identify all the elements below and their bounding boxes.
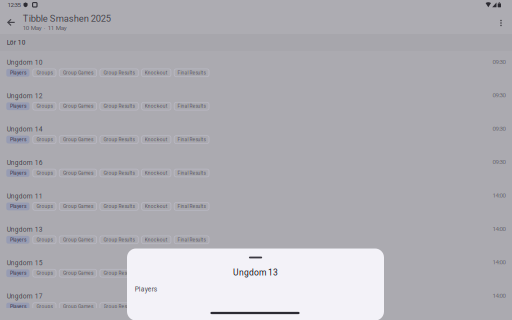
button[interactable]: Ungdom 16: [0, 151, 512, 185]
staticText: Group Games: [63, 204, 93, 209]
button[interactable]: Groups: [33, 69, 56, 77]
button[interactable]: Knock-out: [142, 169, 171, 177]
staticText: 09:30: [492, 125, 505, 132]
button[interactable]: Ungdom 11: [0, 185, 512, 218]
button[interactable]: Final Results: [174, 236, 209, 244]
button[interactable]: Final Results: [174, 102, 209, 110]
button[interactable]: Final Results: [174, 69, 209, 77]
button[interactable]: Players: [6, 102, 29, 110]
staticText: Tibble Smashen 2025: [23, 13, 111, 24]
button[interactable]: Group Games: [59, 69, 97, 77]
staticText: Groups: [36, 137, 52, 142]
staticText: Group Games: [63, 170, 93, 176]
button[interactable]: Group Results: [100, 136, 138, 143]
button[interactable]: Players: [6, 169, 29, 177]
button[interactable]: Ungdom 13: [0, 218, 512, 251]
button[interactable]: Group Results: [100, 236, 138, 244]
button[interactable]: Final Results: [174, 169, 209, 177]
staticText: 14:00: [492, 292, 505, 299]
button[interactable]: Final Results: [174, 136, 209, 143]
button[interactable]: Final Results: [174, 202, 209, 210]
button[interactable]: More options: [0, 0, 14, 16]
button[interactable]: Groups: [33, 236, 56, 244]
staticText: Players: [10, 304, 26, 309]
button[interactable]: Groups: [33, 136, 56, 143]
button[interactable]: Groups: [33, 169, 56, 177]
staticText: Groups: [36, 270, 52, 276]
button[interactable]: Knock-out: [142, 102, 171, 110]
staticText: Group Results: [104, 137, 135, 142]
staticText: 14:00: [492, 259, 505, 266]
button[interactable]: Ungdom 12: [0, 84, 512, 118]
staticText: Ungdom 10: [7, 59, 43, 66]
staticText: Knock-out: [145, 137, 168, 142]
button[interactable]: Ungdom 10: [0, 51, 512, 84]
button[interactable]: Group Results: [100, 303, 138, 310]
button[interactable]: Group Games: [59, 169, 97, 177]
staticText: 10 May · 11 May: [23, 24, 67, 32]
button[interactable]: Group Results: [100, 202, 138, 210]
button[interactable]: Knock-out: [142, 236, 171, 244]
button[interactable]: Group Games: [59, 303, 97, 310]
staticText: Players: [135, 285, 157, 293]
button[interactable]: Players: [6, 303, 29, 310]
staticText: Ungdom 13: [233, 268, 278, 278]
staticText: Group Games: [63, 237, 93, 243]
button[interactable]: Players: [6, 269, 29, 277]
staticText: Group Games: [63, 304, 93, 309]
button[interactable]: Players: [6, 136, 29, 143]
staticText: Knock-out: [145, 237, 168, 243]
button[interactable]: Knock-out: [142, 136, 171, 143]
button[interactable]: Group Games: [59, 136, 97, 143]
staticText: Final Results: [178, 170, 206, 176]
staticText: Ungdom 17: [7, 292, 43, 300]
staticText: 12:35: [7, 1, 20, 8]
staticText: Final Results: [178, 70, 206, 76]
button[interactable]: Group Games: [59, 202, 97, 210]
staticText: 09:30: [492, 158, 505, 166]
staticText: Group Results: [104, 70, 135, 76]
staticText: Group Results: [104, 204, 135, 209]
staticText: Final Results: [178, 237, 206, 243]
staticText: Group Games: [63, 270, 93, 276]
button[interactable]: Ungdom 17: [0, 285, 512, 318]
button[interactable]: Players: [6, 202, 29, 210]
staticText: Players: [10, 137, 26, 142]
button[interactable]: Group Results: [100, 169, 138, 177]
button[interactable]: Back: [0, 0, 16, 16]
staticText: 14:00: [492, 225, 505, 232]
staticText: Players: [10, 103, 26, 109]
staticText: Final Results: [178, 103, 206, 109]
staticText: Final Results: [178, 137, 206, 142]
button[interactable]: Knock-out: [142, 202, 171, 210]
button[interactable]: Group Results: [100, 102, 138, 110]
staticText: Players: [10, 204, 26, 209]
button[interactable]: Groups: [33, 303, 56, 310]
button[interactable]: Groups: [33, 202, 56, 210]
button[interactable]: Group Results: [100, 269, 138, 277]
button[interactable]: Group Results: [100, 69, 138, 77]
staticText: 09:30: [492, 58, 505, 65]
button[interactable]: Players: [6, 236, 29, 244]
button[interactable]: Ungdom 15: [0, 251, 512, 285]
staticText: Group Games: [63, 70, 93, 76]
button[interactable]: Group Games: [59, 236, 97, 244]
staticText: 14:00: [492, 192, 505, 199]
staticText: Ungdom 16: [7, 159, 43, 167]
button[interactable]: Group Games: [59, 102, 97, 110]
staticText: Players: [10, 237, 26, 243]
staticText: Group Results: [104, 304, 135, 309]
button[interactable]: Knock-out: [142, 69, 171, 77]
button[interactable]: Groups: [33, 269, 56, 277]
staticText: Groups: [36, 103, 52, 109]
button[interactable]: Players: [6, 69, 29, 77]
button[interactable]: Group Games: [59, 269, 97, 277]
button[interactable]: Groups: [33, 102, 56, 110]
staticText: Group Results: [104, 170, 135, 176]
staticText: Group Games: [63, 103, 93, 109]
button[interactable]: Ungdom 14: [0, 118, 512, 151]
